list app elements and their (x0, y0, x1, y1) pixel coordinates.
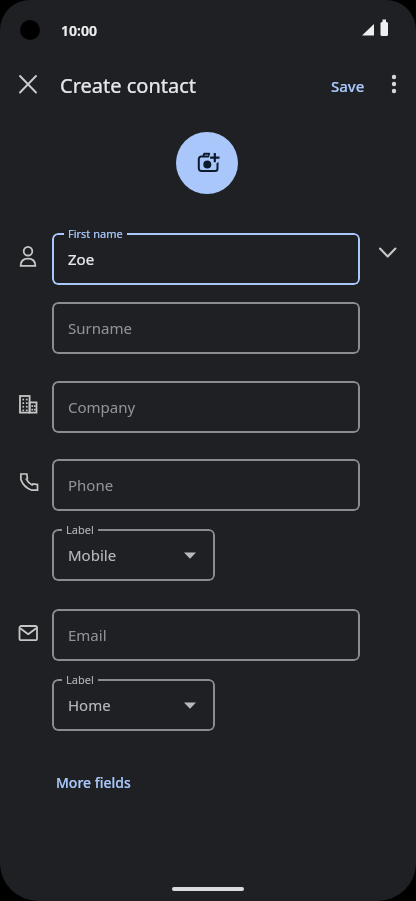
staticText: Mobile (68, 545, 117, 565)
staticText: Create contact (60, 72, 197, 99)
button[interactable] (176, 132, 238, 194)
button[interactable]: Zoe (52, 233, 360, 285)
staticText: Email (68, 625, 107, 645)
button[interactable]: Save (331, 76, 365, 96)
button[interactable]: Surname (52, 302, 360, 354)
staticText: Company (68, 397, 136, 417)
staticText: Label (66, 672, 94, 687)
staticText: First name (68, 226, 123, 241)
staticText: Zoe (68, 249, 95, 269)
button[interactable]: Home (52, 679, 215, 731)
button[interactable] (12, 68, 44, 100)
button[interactable] (382, 70, 408, 96)
button[interactable]: Company (52, 381, 360, 433)
staticText: Label (66, 522, 94, 537)
button[interactable]: More fields (56, 773, 131, 792)
staticText: Surname (68, 318, 132, 338)
staticText: Phone (68, 475, 114, 495)
staticText: 10:00 (61, 21, 97, 40)
staticText: Home (68, 695, 111, 715)
button[interactable]: Email (52, 609, 360, 661)
staticText: More fields (56, 773, 131, 792)
button[interactable]: Mobile (52, 529, 215, 581)
staticText: Save (331, 76, 365, 96)
button[interactable]: Phone (52, 459, 360, 511)
